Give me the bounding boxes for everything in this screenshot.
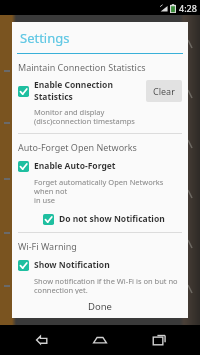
staticText: Settings	[20, 29, 70, 47]
staticText: Wi-Fi Warning	[18, 240, 77, 252]
button[interactable]: Enable Connection Statistics	[18, 79, 143, 103]
staticText: Auto-Forget Open Networks	[18, 141, 137, 153]
staticText: Show Notification	[34, 259, 110, 271]
staticText: Forget automatically Open Networks when …	[34, 177, 182, 206]
staticText: Enable Auto-Forget	[34, 160, 116, 172]
button[interactable]: Done	[12, 294, 188, 318]
staticText: Maintain Connection Statistics	[18, 61, 146, 73]
button[interactable]: Recent apps	[142, 325, 176, 355]
staticText: Done	[88, 300, 112, 313]
staticText: Clear	[153, 85, 175, 97]
button[interactable]: Home	[83, 325, 117, 355]
button[interactable]: Do not show Notification	[43, 213, 165, 225]
button[interactable]: Show Notification	[18, 259, 110, 271]
button[interactable]: Back	[25, 325, 59, 355]
staticText: 4:28	[179, 2, 197, 14]
button[interactable]: Clear	[146, 80, 182, 102]
staticText: Show notification if the Wi-Fi is on but…	[34, 276, 182, 294]
button[interactable]: Enable Auto-Forget	[18, 160, 116, 172]
staticText: Do not show Notification	[59, 213, 165, 225]
staticText: Monitor and display (disc)connection tim…	[34, 107, 135, 127]
staticText: Enable Connection Statistics	[34, 79, 143, 103]
